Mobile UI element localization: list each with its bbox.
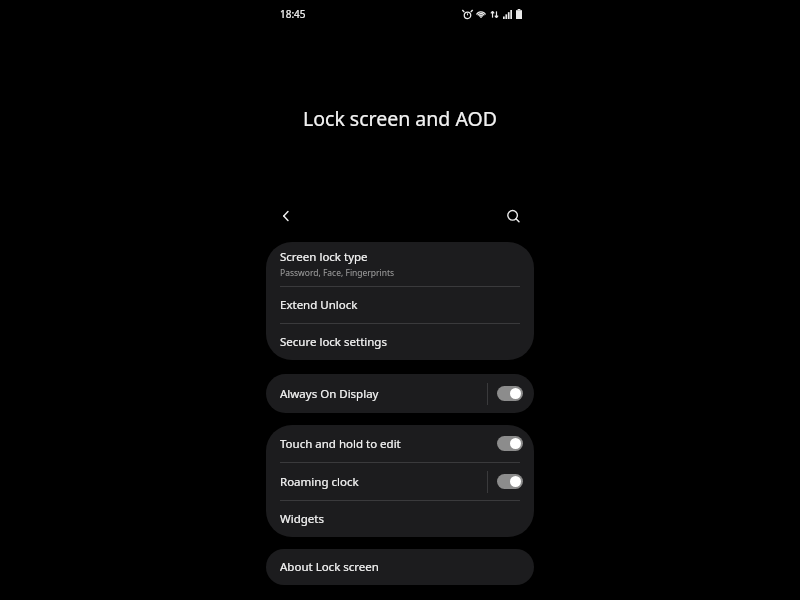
button[interactable]: Toggle on: [497, 474, 523, 489]
button[interactable]: Toggle on: [497, 386, 523, 401]
button[interactable]: About Lock screen: [266, 549, 534, 585]
staticText: Secure lock settings: [280, 334, 387, 350]
button[interactable]: Back: [272, 202, 300, 230]
button[interactable]: Touch and hold to edit: [266, 425, 534, 462]
button[interactable]: Toggle on: [497, 436, 523, 451]
staticText: 18:45: [280, 7, 306, 21]
button[interactable]: Always On Display: [266, 374, 534, 413]
staticText: Roaming clock: [280, 474, 359, 490]
button[interactable]: Search: [499, 202, 527, 230]
button[interactable]: Secure lock settings: [266, 324, 534, 360]
staticText: About Lock screen: [280, 559, 379, 575]
staticText: Password, Face, Fingerprints: [280, 267, 395, 279]
button[interactable]: Roaming clock: [266, 463, 534, 500]
button[interactable]: Widgets: [266, 501, 534, 537]
staticText: Touch and hold to edit: [280, 436, 401, 452]
staticText: Extend Unlock: [280, 297, 358, 313]
staticText: Lock screen and AOD: [303, 105, 497, 132]
staticText: Widgets: [280, 511, 324, 527]
button[interactable]: Extend Unlock: [266, 287, 534, 323]
button[interactable]: Screen lock type: [266, 242, 534, 286]
staticText: Always On Display: [280, 386, 379, 402]
staticText: Screen lock type: [280, 249, 368, 265]
